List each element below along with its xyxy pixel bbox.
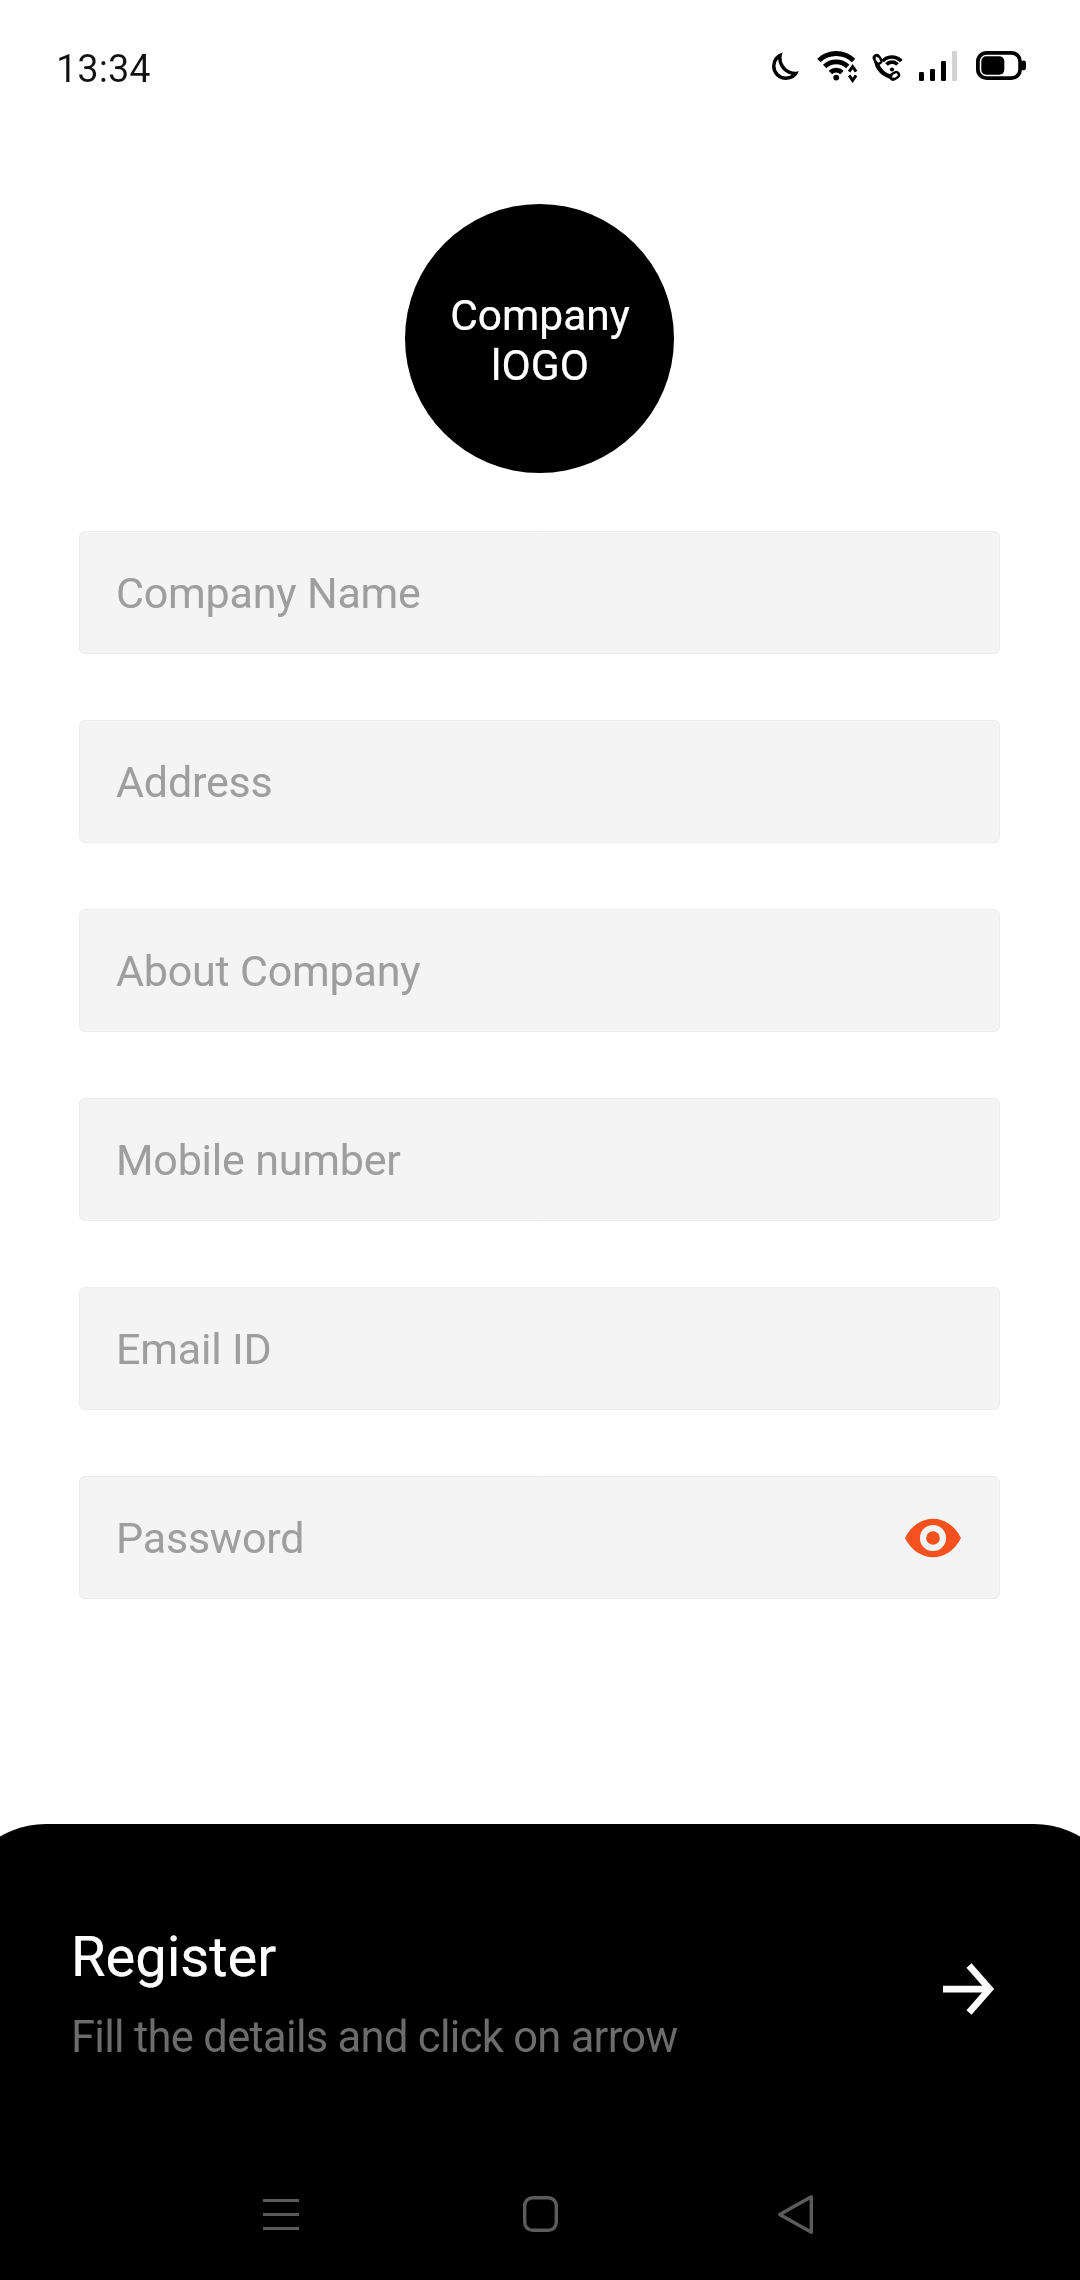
button[interactable]: Submit registration xyxy=(918,1939,1018,2039)
staticText: Address xyxy=(116,757,273,807)
staticText: Email ID xyxy=(116,1324,272,1374)
staticText: Mobile number xyxy=(116,1135,401,1185)
button[interactable]: Company Name xyxy=(79,531,1000,654)
button[interactable]: Recent apps xyxy=(241,2174,321,2254)
button[interactable]: Home xyxy=(500,2174,580,2254)
staticText: Register xyxy=(71,1924,277,1990)
button[interactable]: Back xyxy=(755,2174,835,2254)
button[interactable]: Password xyxy=(79,1476,1000,1599)
button[interactable]: Register xyxy=(0,1824,1080,2160)
button[interactable]: Email ID xyxy=(79,1287,1000,1410)
button[interactable]: About Company xyxy=(79,909,1000,1032)
button[interactable]: Show password xyxy=(901,1512,965,1564)
button[interactable]: Mobile number xyxy=(79,1098,1000,1221)
staticText: 13:34 xyxy=(56,47,151,92)
staticText: Company lOGO xyxy=(450,291,630,390)
button[interactable]: Address xyxy=(79,720,1000,843)
staticText: Fill the details and click on arrow xyxy=(71,2012,678,2063)
staticText: Company Name xyxy=(116,568,421,618)
staticText: Password xyxy=(116,1513,305,1563)
staticText: About Company xyxy=(116,946,421,996)
